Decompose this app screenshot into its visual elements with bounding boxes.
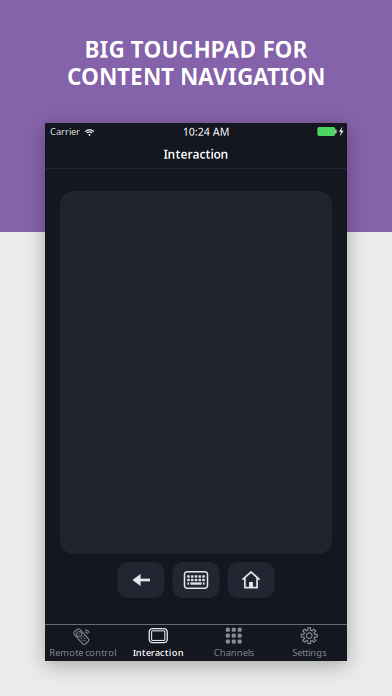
staticText: Interaction bbox=[163, 146, 228, 162]
button[interactable]: Settings bbox=[271, 625, 347, 661]
staticText: Remote control bbox=[49, 646, 116, 659]
staticText: BIG TOUCHPAD FOR bbox=[84, 34, 307, 64]
button[interactable]: Remote control bbox=[45, 625, 120, 661]
staticText: Channels bbox=[214, 646, 254, 659]
staticText: Settings bbox=[292, 646, 326, 659]
staticText: CONTENT NAVIGATION bbox=[67, 61, 325, 91]
button[interactable]: Keyboard bbox=[172, 562, 219, 598]
staticText: Carrier bbox=[50, 125, 80, 138]
staticText: Interaction bbox=[133, 646, 184, 659]
button[interactable]: Back bbox=[117, 562, 164, 598]
button[interactable]: Interaction bbox=[120, 625, 196, 661]
button[interactable]: Channels bbox=[196, 625, 271, 661]
button[interactable]: Home bbox=[227, 562, 274, 598]
staticText: 10:24 AM bbox=[183, 124, 230, 139]
